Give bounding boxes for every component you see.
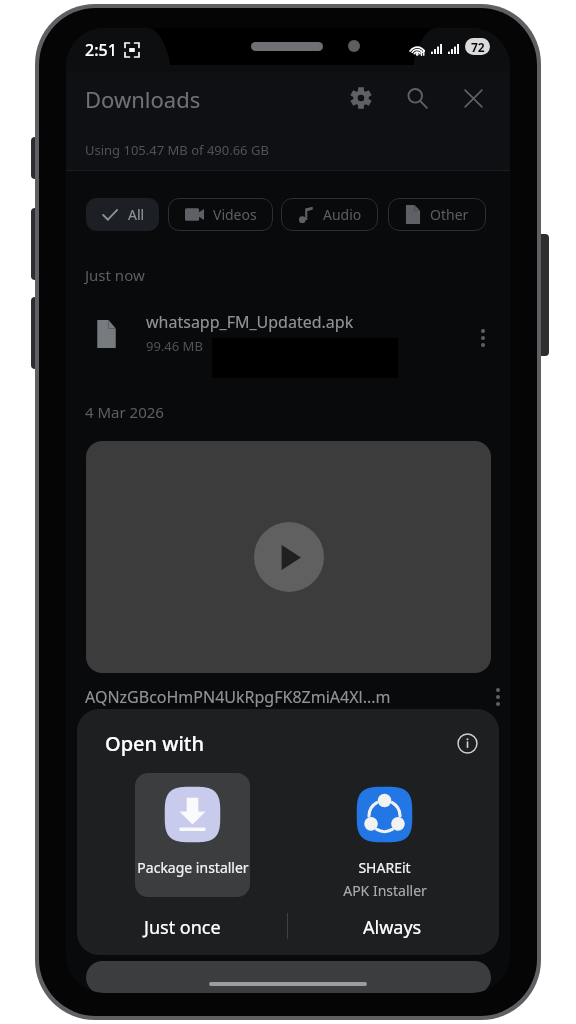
staticText: 4 Mar 2026	[85, 402, 164, 422]
button[interactable]	[86, 441, 491, 673]
staticText: 99.46 MB	[146, 337, 203, 355]
button[interactable]: Close	[456, 81, 490, 115]
button[interactable]: Just once	[107, 902, 258, 952]
staticText: 2:51	[85, 39, 117, 61]
staticText: AQNzGBcoHmPN4UkRpgFK8ZmiA4Xl...m	[85, 686, 496, 708]
button[interactable]: Other	[388, 198, 486, 231]
button[interactable]: Settings	[344, 81, 378, 115]
staticText: Package installer	[137, 858, 249, 877]
staticText: Open with	[105, 730, 205, 757]
staticText: Using 105.47 MB of 490.66 GB	[85, 141, 269, 159]
staticText: Audio	[323, 205, 362, 224]
staticText: Just now	[85, 265, 145, 285]
button[interactable]: Info	[451, 727, 483, 759]
staticText: 72	[471, 39, 485, 55]
staticText: Always	[363, 915, 422, 940]
button[interactable]: All	[86, 198, 159, 231]
staticText: whatsapp_FM_Updated.apk	[146, 311, 354, 333]
staticText: Videos	[213, 205, 257, 224]
staticText: APK Installer	[343, 881, 427, 897]
button[interactable]: Audio	[281, 198, 378, 231]
button[interactable]	[66, 300, 510, 370]
staticText: SHAREit	[358, 858, 411, 877]
staticText: Downloads	[85, 84, 201, 114]
button[interactable]: Videos	[168, 198, 273, 231]
staticText: Other	[430, 205, 469, 224]
button[interactable]: SHAREit	[327, 773, 442, 897]
button[interactable]: Always	[317, 902, 468, 952]
button[interactable]: Search	[400, 81, 434, 115]
staticText: Just once	[144, 915, 221, 940]
button[interactable]: Package installer	[135, 773, 250, 897]
staticText: All	[128, 205, 145, 224]
button[interactable]: More options	[470, 325, 496, 351]
